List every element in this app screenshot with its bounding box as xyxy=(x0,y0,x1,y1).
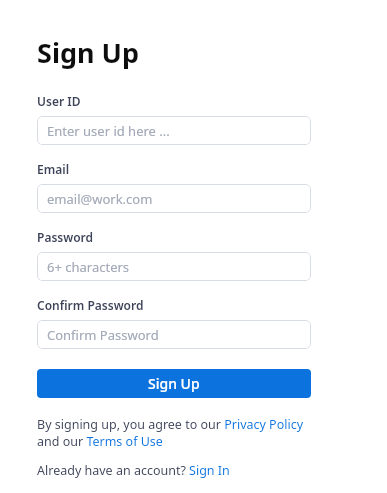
button[interactable]: Sign Up xyxy=(37,369,311,398)
staticText: User ID xyxy=(37,93,81,109)
staticText: Already have an account? Sign In xyxy=(37,462,230,479)
staticText: Email xyxy=(37,161,70,177)
button[interactable]: Confirm Password xyxy=(37,320,311,349)
button[interactable]: Password xyxy=(37,252,311,281)
button[interactable]: User ID xyxy=(37,116,311,145)
button[interactable]: By signing up, you agree to our Privacy … xyxy=(37,416,311,450)
button[interactable]: Already have an account? Sign In xyxy=(37,462,311,479)
staticText: Sign Up xyxy=(37,34,140,71)
button[interactable]: Email xyxy=(37,184,311,213)
staticText: 6+ characters xyxy=(47,258,130,276)
staticText: Password xyxy=(37,229,94,245)
staticText: Confirm Password xyxy=(47,326,159,344)
staticText: Sign Up xyxy=(148,374,200,393)
staticText: email@work.com xyxy=(47,190,153,208)
staticText: Enter user id here ... xyxy=(47,122,170,140)
staticText: By signing up, you agree to our Privacy … xyxy=(37,416,311,450)
staticText: Confirm Password xyxy=(37,297,144,313)
